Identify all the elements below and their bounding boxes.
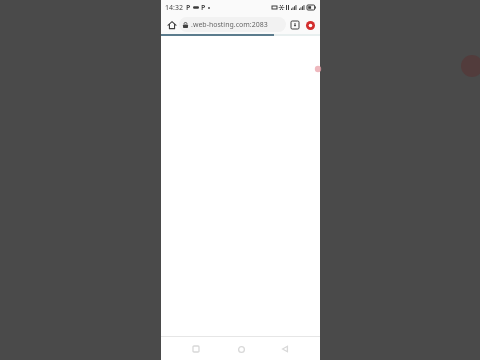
button[interactable]: Home bbox=[231, 339, 251, 359]
button[interactable]: Home bbox=[164, 17, 179, 32]
button[interactable]: Back bbox=[275, 339, 295, 359]
staticText: 14:32 bbox=[165, 3, 183, 13]
button[interactable]: Recent apps bbox=[186, 339, 206, 359]
button[interactable]: .web-hosting.com:2083 bbox=[179, 17, 286, 32]
button[interactable]: Stop loading bbox=[303, 18, 317, 32]
staticText: P bbox=[201, 3, 206, 13]
staticText: .web-hosting.com:2083 bbox=[191, 20, 268, 30]
staticText: P bbox=[186, 3, 191, 13]
button[interactable]: Downloads bbox=[288, 18, 302, 32]
